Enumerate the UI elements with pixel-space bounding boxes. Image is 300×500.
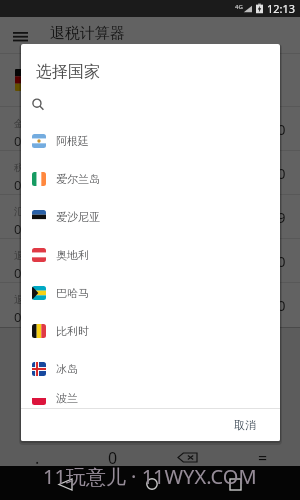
staticText: 4 — [33, 373, 43, 395]
staticText: 退款 — [14, 293, 34, 306]
button[interactable]: 8 — [75, 402, 150, 439]
button[interactable]: 1 — [0, 328, 75, 365]
staticText: 冰岛 — [56, 362, 78, 376]
button[interactable]: 爱沙尼亚 — [21, 198, 280, 236]
staticText: 0 — [108, 447, 118, 469]
staticText: 选择国家 — [36, 62, 100, 82]
staticText: 退税 — [14, 249, 34, 262]
button[interactable]: 汇率 — [0, 195, 300, 239]
staticText: 0 — [14, 264, 22, 282]
staticText: 爱沙尼亚 — [56, 210, 100, 224]
staticText: 奥地利 — [56, 248, 89, 262]
staticText: 税率 — [14, 161, 34, 174]
other: Backspace — [178, 453, 197, 462]
button[interactable]: 9 — [150, 402, 225, 439]
staticText: 9 — [277, 207, 286, 227]
button[interactable]: 巴哈马 — [21, 274, 280, 312]
staticText: 汇率 — [14, 205, 34, 218]
button[interactable]: 4 — [0, 365, 75, 402]
staticText: 金额 — [14, 117, 34, 130]
button[interactable]: Back — [48, 467, 82, 500]
other: Search — [32, 98, 45, 111]
button[interactable]: 波兰 — [21, 388, 280, 408]
staticText: 巴哈马 — [56, 286, 89, 300]
button[interactable]: Home — [135, 467, 169, 500]
staticText: 0 — [277, 119, 286, 139]
staticText: 0 — [14, 132, 22, 150]
button[interactable]: 税率 — [0, 151, 300, 195]
staticText: 11玩意儿 · 11WYX.COM — [43, 463, 257, 490]
button[interactable]: 阿根廷 — [21, 122, 280, 160]
staticText: 爱尔兰岛 — [56, 172, 100, 186]
staticText: 4G — [235, 3, 243, 11]
staticText: 0 — [14, 176, 22, 194]
staticText: 0 — [277, 295, 286, 315]
button[interactable]: 退税 — [0, 239, 300, 283]
button[interactable]: = — [225, 439, 300, 476]
staticText: 退税计算器 — [50, 24, 125, 43]
staticText: 阿根廷 — [56, 134, 89, 148]
button[interactable]: 比利时 — [21, 312, 280, 350]
button[interactable]: 0 — [75, 439, 150, 476]
button[interactable]: Search — [21, 79, 280, 122]
button[interactable]: 7 — [0, 402, 75, 439]
button[interactable]: + — [225, 365, 300, 402]
staticText: 取消 — [234, 418, 256, 432]
button[interactable]: 爱尔兰岛 — [21, 160, 280, 198]
button[interactable]: Backspace — [150, 439, 225, 476]
button[interactable]: 2 — [75, 328, 150, 365]
staticText: 德国 — [39, 72, 65, 88]
staticText: 12:13 — [267, 1, 296, 16]
staticText: 0 — [277, 163, 286, 183]
button[interactable]: 奥地利 — [21, 236, 280, 274]
button[interactable]: - — [225, 402, 300, 439]
button[interactable]: 冰岛 — [21, 350, 280, 388]
staticText: 比利时 — [56, 324, 89, 338]
button[interactable]: 5 — [75, 365, 150, 402]
staticText: . — [35, 447, 40, 469]
button[interactable]: 取消 — [226, 413, 264, 437]
button[interactable]: . — [0, 439, 75, 476]
staticText: 0 — [277, 251, 286, 271]
button[interactable]: 金额 — [0, 107, 300, 151]
button[interactable]: 德国 — [0, 54, 300, 106]
staticText: 波兰 — [56, 391, 78, 405]
staticText: = — [258, 447, 268, 469]
button[interactable]: Menu — [6, 17, 34, 46]
staticText: 1 — [33, 336, 43, 358]
staticText: 0 — [14, 308, 22, 326]
button[interactable]: Recents — [218, 467, 252, 500]
staticText: 0 — [14, 220, 22, 238]
button[interactable]: C — [225, 328, 300, 365]
